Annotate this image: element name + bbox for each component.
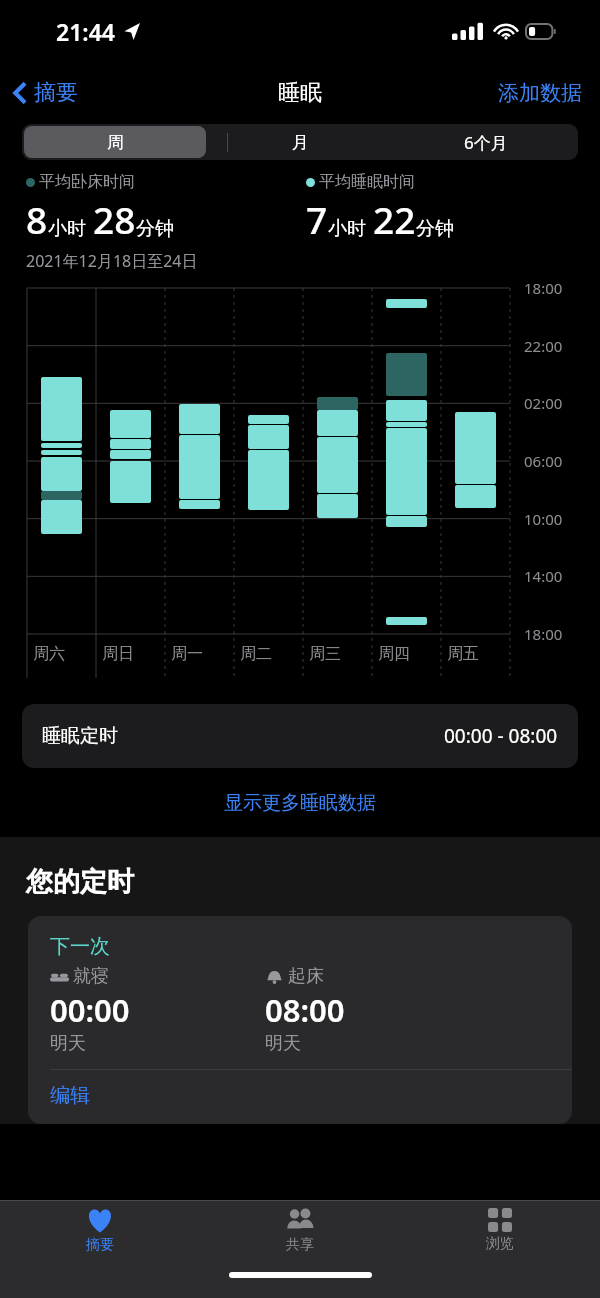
staticText: 22:00 [524, 336, 563, 356]
staticText: 22 [373, 194, 416, 244]
staticText: 08:00 [265, 989, 345, 1031]
staticText: 2021年12月18日至24日 [26, 250, 198, 272]
staticText: 就寝 [73, 965, 109, 988]
staticText: 周三 [309, 644, 341, 664]
button[interactable]: 6个月 [395, 126, 576, 158]
staticText: 共享 [286, 1236, 314, 1254]
button[interactable]: 显示更多睡眠数据 [0, 783, 600, 823]
staticText: 明天 [265, 1032, 301, 1055]
staticText: 平均睡眠时间 [319, 172, 415, 192]
button[interactable]: 摘要 [0, 73, 88, 113]
button[interactable]: 浏览 [400, 1201, 600, 1263]
staticText: 小时 [48, 217, 86, 241]
staticText: 00:00 - 08:00 [444, 723, 558, 749]
staticText: 小时 [328, 217, 366, 241]
staticText: 编辑 [50, 1083, 90, 1108]
staticText: 周日 [102, 644, 134, 664]
staticText: 周一 [171, 644, 203, 664]
button[interactable]: 添加数据 [480, 74, 600, 112]
staticText: 7 [306, 194, 328, 244]
staticText: 起床 [288, 965, 324, 988]
staticText: 睡眠定时 [42, 724, 118, 748]
staticText: 下一次 [50, 934, 110, 959]
staticText: 00:00 [50, 989, 130, 1031]
staticText: 21:44 [56, 16, 115, 47]
staticText: 28 [93, 194, 136, 244]
button[interactable]: 编辑 [28, 1070, 572, 1124]
button[interactable]: 共享 [200, 1201, 400, 1263]
staticText: 摘要 [86, 1236, 114, 1254]
staticText: 周五 [447, 644, 479, 664]
staticText: 添加数据 [498, 80, 582, 106]
staticText: 06:00 [524, 451, 563, 471]
staticText: 平均卧床时间 [39, 172, 135, 192]
staticText: 02:00 [524, 393, 563, 413]
staticText: 分钟 [416, 217, 454, 241]
staticText: 显示更多睡眠数据 [224, 791, 376, 815]
staticText: 8 [26, 194, 48, 244]
staticText: 14:00 [524, 566, 563, 586]
button[interactable]: 摘要 [0, 1201, 200, 1263]
staticText: 6个月 [464, 131, 508, 154]
staticText: 周 [107, 132, 124, 153]
staticText: 18:00 [524, 624, 563, 644]
staticText: 18:00 [524, 278, 563, 298]
staticText: 浏览 [486, 1235, 514, 1253]
staticText: 月 [292, 132, 309, 153]
button[interactable]: 睡眠定时 [22, 704, 578, 768]
staticText: 周四 [378, 644, 410, 664]
button[interactable]: 周 [24, 126, 206, 158]
staticText: 10:00 [524, 509, 563, 529]
staticText: 分钟 [136, 217, 174, 241]
staticText: 周二 [240, 644, 272, 664]
staticText: 您的定时 [26, 865, 134, 899]
button[interactable]: 月 [210, 126, 391, 158]
staticText: 明天 [50, 1032, 86, 1055]
staticText: 周六 [33, 644, 65, 664]
staticText: 摘要 [34, 79, 78, 107]
staticText: 睡眠 [278, 79, 322, 107]
